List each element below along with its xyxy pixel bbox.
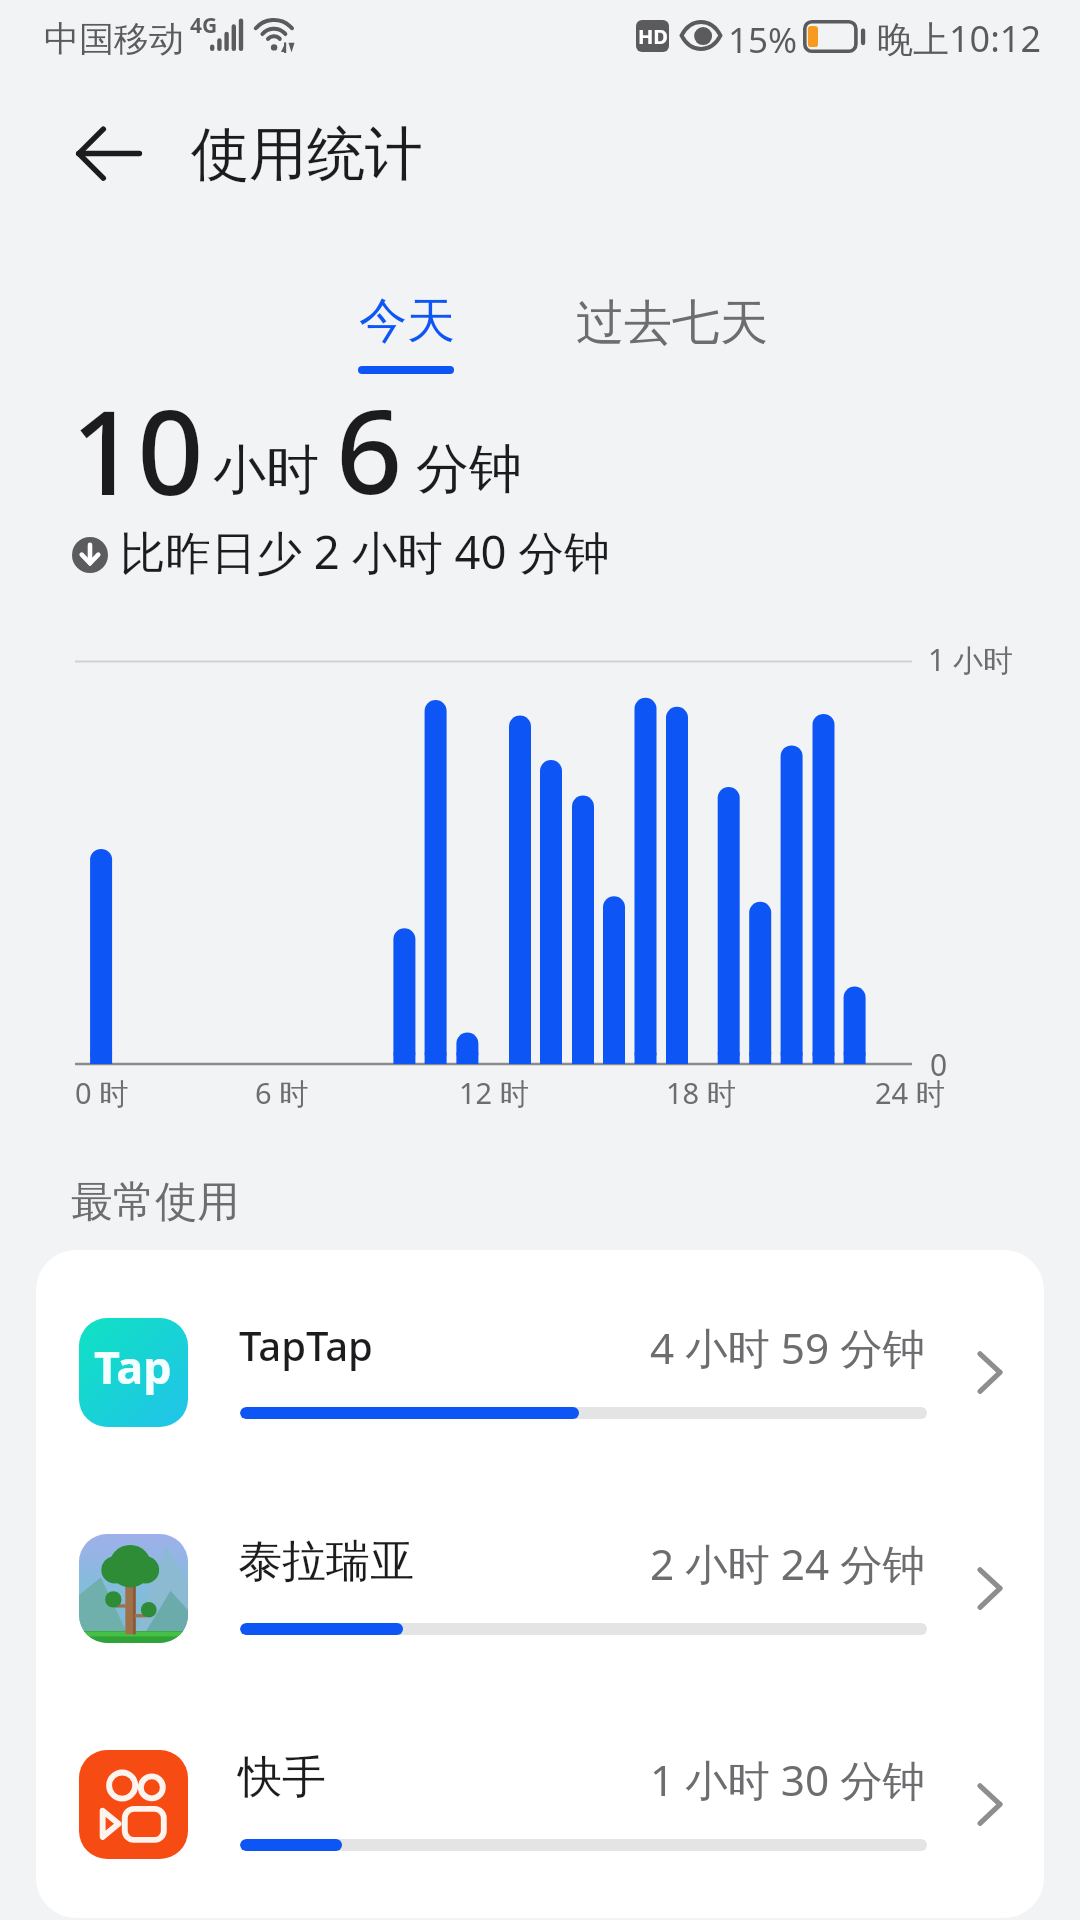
staticText: 18 时 [666, 1073, 736, 1113]
staticText: 2 小时 24 分钟 [650, 1535, 925, 1593]
staticText: 比昨日少 2 小时 40 分钟 [120, 520, 610, 582]
staticText: HD [638, 23, 668, 50]
button[interactable]: Tap [36, 1260, 1044, 1476]
staticText: 24 时 [875, 1073, 945, 1113]
staticText: 中国移动 [44, 17, 184, 61]
staticText: 小时 [213, 437, 319, 504]
staticText: 12 时 [459, 1073, 529, 1113]
staticText: 今天 [359, 291, 455, 351]
staticText: TapTap [239, 1318, 373, 1372]
button[interactable]: 泰拉瑞亚 [36, 1476, 1044, 1692]
button[interactable]: 快手 [36, 1692, 1044, 1908]
staticText: 最常使用 [71, 1176, 239, 1229]
staticText: 10 [71, 371, 204, 529]
staticText: 0 [930, 1044, 948, 1085]
staticText: 分钟 [416, 436, 522, 503]
staticText: 0 时 [75, 1073, 129, 1113]
button[interactable]: 今天 [345, 280, 467, 380]
staticText: 泰拉瑞亚 [238, 1534, 414, 1589]
staticText: 6 时 [255, 1073, 309, 1113]
staticText: 15% [728, 16, 798, 64]
staticText: 使用统计 [191, 118, 423, 191]
staticText: 6 [336, 370, 403, 528]
staticText: Tap [94, 1336, 172, 1397]
staticText: 过去七天 [576, 293, 768, 353]
button[interactable]: 过去七天 [566, 283, 776, 353]
staticText: 晚上10:12 [877, 14, 1042, 63]
staticText: 1 小时 30 分钟 [650, 1751, 925, 1809]
staticText: 1 小时 [928, 639, 1013, 680]
staticText: 4 小时 59 分钟 [650, 1319, 925, 1377]
staticText: 快手 [238, 1750, 326, 1805]
button[interactable]: Back [58, 112, 142, 196]
staticText: 4G [190, 11, 218, 40]
